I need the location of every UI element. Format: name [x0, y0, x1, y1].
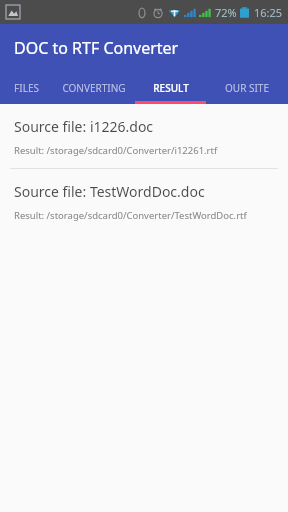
staticText: 72%: [215, 5, 237, 20]
button[interactable]: RESULT: [135, 72, 206, 104]
staticText: DOC to RTF Converter: [14, 37, 179, 59]
staticText: FILES: [14, 81, 39, 95]
button[interactable]: Source file: i1226.doc: [0, 104, 288, 168]
staticText: Result: /storage/sdcard0/Converter/TestW…: [14, 209, 247, 222]
button[interactable]: Source file: TestWordDoc.doc: [0, 169, 288, 233]
staticText: RESULT: [153, 81, 189, 95]
staticText: 16:25: [254, 5, 283, 20]
button[interactable]: FILES: [0, 72, 53, 104]
staticText: CONVERTING: [62, 81, 126, 95]
staticText: OUR SITE: [225, 81, 269, 95]
staticText: Source file: TestWordDoc.doc: [14, 182, 205, 201]
staticText: Source file: i1226.doc: [14, 117, 154, 136]
button[interactable]: OUR SITE: [206, 72, 288, 104]
staticText: Result: /storage/sdcard0/Converter/i1226…: [14, 144, 218, 157]
button[interactable]: CONVERTING: [53, 72, 135, 104]
